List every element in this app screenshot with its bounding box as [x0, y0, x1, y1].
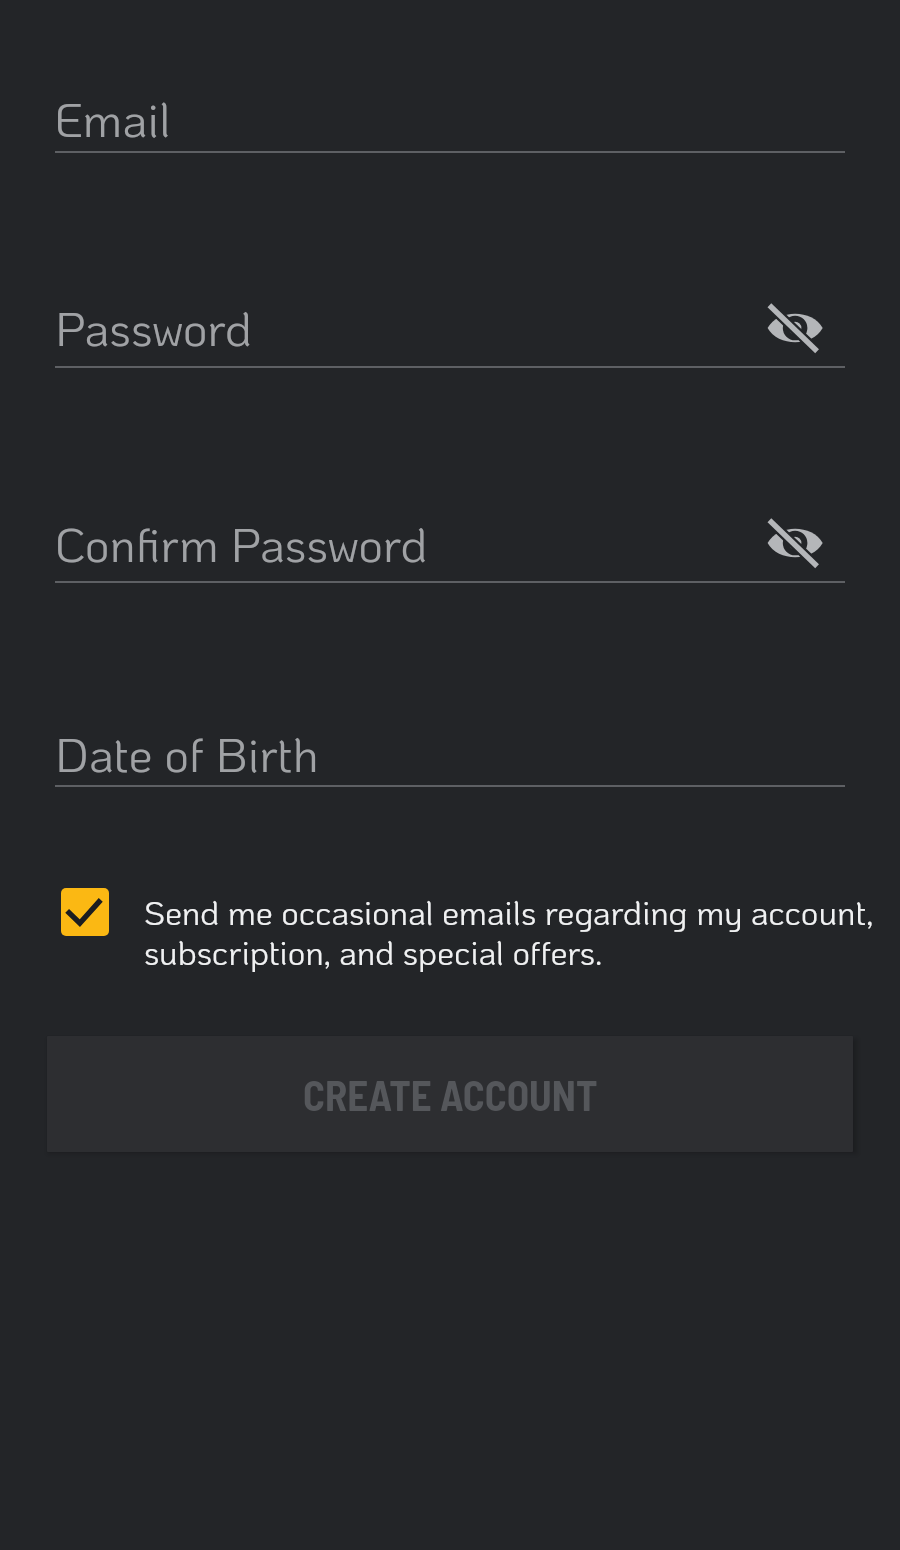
- staticText: Password: [55, 296, 253, 358]
- button[interactable]: Send me occasional emails regarding my a…: [55, 880, 845, 992]
- staticText: Confirm Password: [55, 512, 428, 574]
- button[interactable]: Show password: [759, 296, 831, 360]
- staticText: Email: [55, 87, 171, 149]
- staticText: CREATE ACCOUNT: [303, 1070, 598, 1119]
- button[interactable]: CREATE ACCOUNT: [47, 1036, 853, 1152]
- button[interactable]: Show password: [759, 511, 831, 575]
- staticText: Send me occasional emails regarding my a…: [144, 889, 889, 973]
- staticText: Date of Birth: [55, 722, 319, 784]
